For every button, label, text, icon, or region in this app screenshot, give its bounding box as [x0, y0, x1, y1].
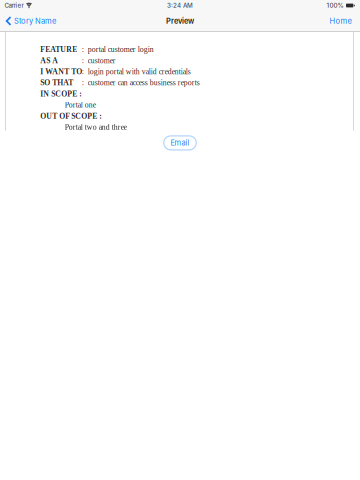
staticText: OUT OF SCOPE : [40, 112, 102, 120]
staticText: IN SCOPE : [40, 90, 82, 98]
staticText: login portal with valid credentials [88, 67, 191, 76]
staticText: Home [329, 16, 351, 26]
button[interactable]: Story Name [0, 11, 62, 31]
staticText: Story Name [14, 16, 56, 26]
staticText: : [82, 78, 84, 87]
staticText: Portal two and three [65, 123, 127, 131]
staticText: : [82, 45, 84, 54]
staticText: 100% [326, 2, 343, 9]
staticText: 3:24 AM [167, 2, 193, 9]
staticText: Preview [166, 16, 194, 25]
staticText: Carrier [5, 2, 24, 9]
staticText: I WANT TO [40, 67, 82, 76]
staticText: FEATURE [40, 45, 77, 54]
staticText: Email [170, 138, 189, 147]
staticText: customer [88, 56, 116, 65]
staticText: AS A [40, 56, 58, 65]
staticText: Portal one [65, 101, 96, 109]
button[interactable]: Home [321, 11, 360, 31]
staticText: portal customer login [88, 45, 154, 54]
staticText: : [82, 67, 84, 76]
staticText: customer can access business reports [88, 78, 200, 87]
staticText: : [82, 56, 84, 65]
staticText: SO THAT [40, 78, 73, 87]
button[interactable]: Email [164, 136, 196, 150]
